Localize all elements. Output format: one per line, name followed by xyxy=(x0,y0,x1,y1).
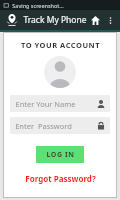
button[interactable]: Enter Password xyxy=(10,117,110,134)
button[interactable]: Home xyxy=(87,12,103,28)
staticText: Saving screenshot... xyxy=(12,2,64,9)
button[interactable]: Enter Your Name xyxy=(10,95,110,112)
button[interactable]: LOG IN xyxy=(36,146,84,163)
button[interactable]: More options xyxy=(103,13,117,27)
staticText: Enter Password xyxy=(15,121,72,131)
staticText: Track My Phone xyxy=(23,14,87,26)
staticText: Forgot Password? xyxy=(25,173,96,184)
staticText: TO YOUR ACCOUNT xyxy=(21,40,100,50)
staticText: LOG IN xyxy=(46,150,75,160)
staticText: Enter Your Name xyxy=(15,99,76,109)
button[interactable]: Forgot Password? xyxy=(21,172,100,185)
button[interactable]: Track My Phone logo xyxy=(3,11,21,29)
